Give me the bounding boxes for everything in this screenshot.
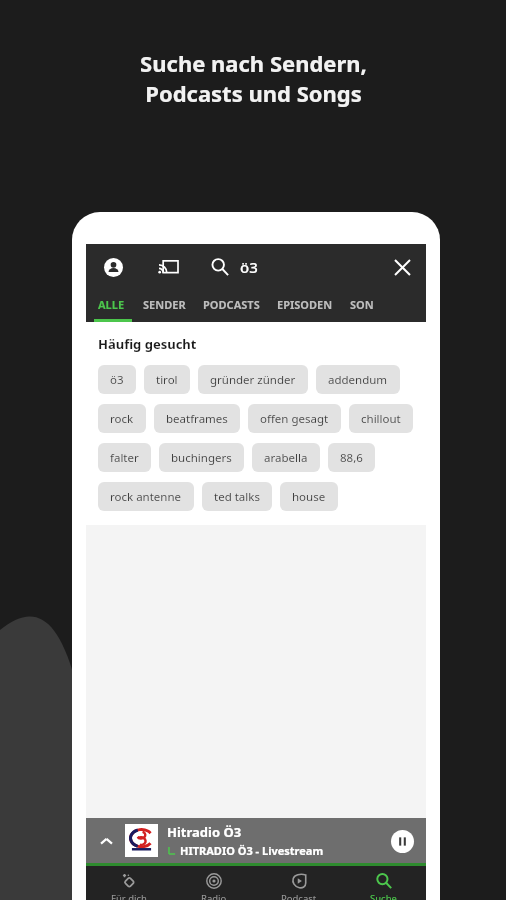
staticText: falter <box>110 450 139 466</box>
button[interactable]: Pause <box>382 821 422 861</box>
staticText: ö3 <box>240 257 258 277</box>
button[interactable]: SON <box>350 289 374 319</box>
staticText: Suche nach Sendern, Podcasts und Songs <box>140 48 367 108</box>
button[interactable]: Suche <box>341 866 426 900</box>
staticText: Hitradio Ö3 <box>167 823 242 841</box>
staticText: rock <box>110 411 134 427</box>
button[interactable]: Expand player <box>92 827 120 855</box>
button[interactable]: falter <box>98 443 151 472</box>
staticText: chillout <box>361 411 401 427</box>
staticText: Häufig gesucht <box>98 335 197 353</box>
staticText: buchingers <box>171 450 232 466</box>
button[interactable]: Radio <box>171 866 256 900</box>
staticText: rock antenne <box>110 489 182 505</box>
staticText: 88,6 <box>340 450 363 466</box>
button[interactable]: Search <box>204 251 236 283</box>
staticText: ted talks <box>214 489 260 505</box>
staticText: beatframes <box>166 411 228 427</box>
button[interactable]: addendum <box>316 365 400 394</box>
staticText: arabella <box>264 450 308 466</box>
button[interactable]: ALLE <box>98 289 125 319</box>
button[interactable]: PODCASTS <box>203 289 260 319</box>
button[interactable]: beatframes <box>154 404 240 433</box>
button[interactable]: gründer zünder <box>198 365 308 394</box>
staticText: gründer zünder <box>210 372 296 388</box>
button[interactable]: buchingers <box>159 443 244 472</box>
staticText: Podcast <box>281 892 317 900</box>
staticText: EPISODEN <box>277 297 333 312</box>
button[interactable]: SENDER <box>143 289 186 319</box>
button[interactable]: house <box>280 482 338 511</box>
button[interactable]: Für dich <box>86 866 171 900</box>
button[interactable]: tirol <box>144 365 190 394</box>
button[interactable]: arabella <box>252 443 320 472</box>
button[interactable]: ö3 <box>98 365 136 394</box>
staticText: SENDER <box>143 297 186 312</box>
button[interactable]: Expand player <box>86 818 426 863</box>
staticText: ALLE <box>98 297 125 312</box>
button[interactable]: rock <box>98 404 146 433</box>
button[interactable]: chillout <box>349 404 413 433</box>
staticText: PODCASTS <box>203 297 260 312</box>
button[interactable]: offen gesagt <box>248 404 341 433</box>
staticText: offen gesagt <box>260 411 329 427</box>
staticText: ö3 <box>110 372 124 388</box>
staticText: Radio <box>201 892 227 900</box>
staticText: house <box>292 489 326 505</box>
button[interactable]: Close <box>382 247 422 287</box>
staticText: HITRADIO Ö3 - Livestream <box>180 843 324 858</box>
button[interactable]: Account <box>96 250 130 284</box>
staticText: tirol <box>156 372 178 388</box>
button[interactable]: Podcast <box>256 866 341 900</box>
staticText: Für dich <box>111 892 147 900</box>
button[interactable]: 88,6 <box>328 443 375 472</box>
button[interactable]: EPISODEN <box>277 289 333 319</box>
staticText: addendum <box>328 372 388 388</box>
button[interactable]: Cast <box>151 250 185 284</box>
staticText: Suche <box>370 892 397 900</box>
button[interactable]: rock antenne <box>98 482 194 511</box>
button[interactable]: ted talks <box>202 482 272 511</box>
staticText: SON <box>350 297 374 312</box>
